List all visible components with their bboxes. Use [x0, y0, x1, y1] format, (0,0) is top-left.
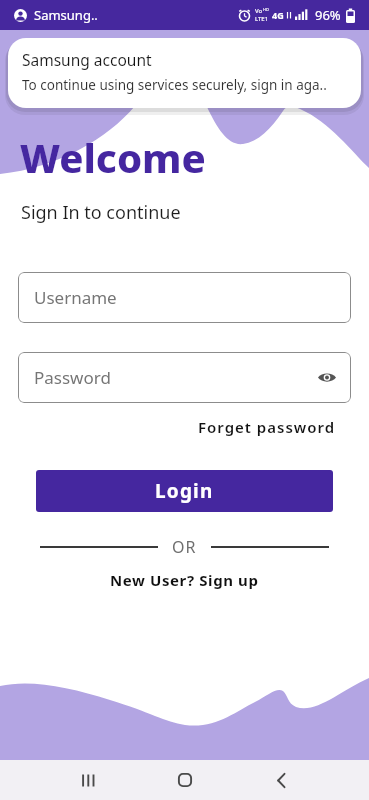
- staticText: LTE1: [255, 15, 269, 23]
- button[interactable]: Forget password: [198, 417, 336, 437]
- staticText: Welcome: [20, 130, 206, 184]
- button[interactable]: Username: [18, 272, 351, 323]
- button[interactable]: New User? Sign up: [110, 570, 259, 590]
- button[interactable]: [41, 760, 137, 800]
- button[interactable]: Samsung account: [8, 38, 361, 108]
- button[interactable]: [137, 760, 233, 800]
- staticText: Vo ᴴᴰ: [255, 7, 269, 15]
- staticText: To continue using services securely, sig…: [22, 76, 327, 94]
- staticText: 96%: [315, 6, 341, 24]
- staticText: OR: [172, 536, 197, 558]
- button[interactable]: [233, 760, 329, 800]
- staticText: Login: [155, 478, 214, 504]
- staticText: Samsung account: [22, 49, 152, 70]
- staticText: Password: [34, 366, 111, 389]
- button[interactable]: Login: [36, 470, 333, 512]
- staticText: 4G: [272, 9, 284, 21]
- staticText: Samsung..: [34, 6, 98, 24]
- button[interactable]: Password: [18, 352, 351, 403]
- staticText: Sign In to continue: [21, 200, 181, 225]
- staticText: Username: [34, 286, 117, 309]
